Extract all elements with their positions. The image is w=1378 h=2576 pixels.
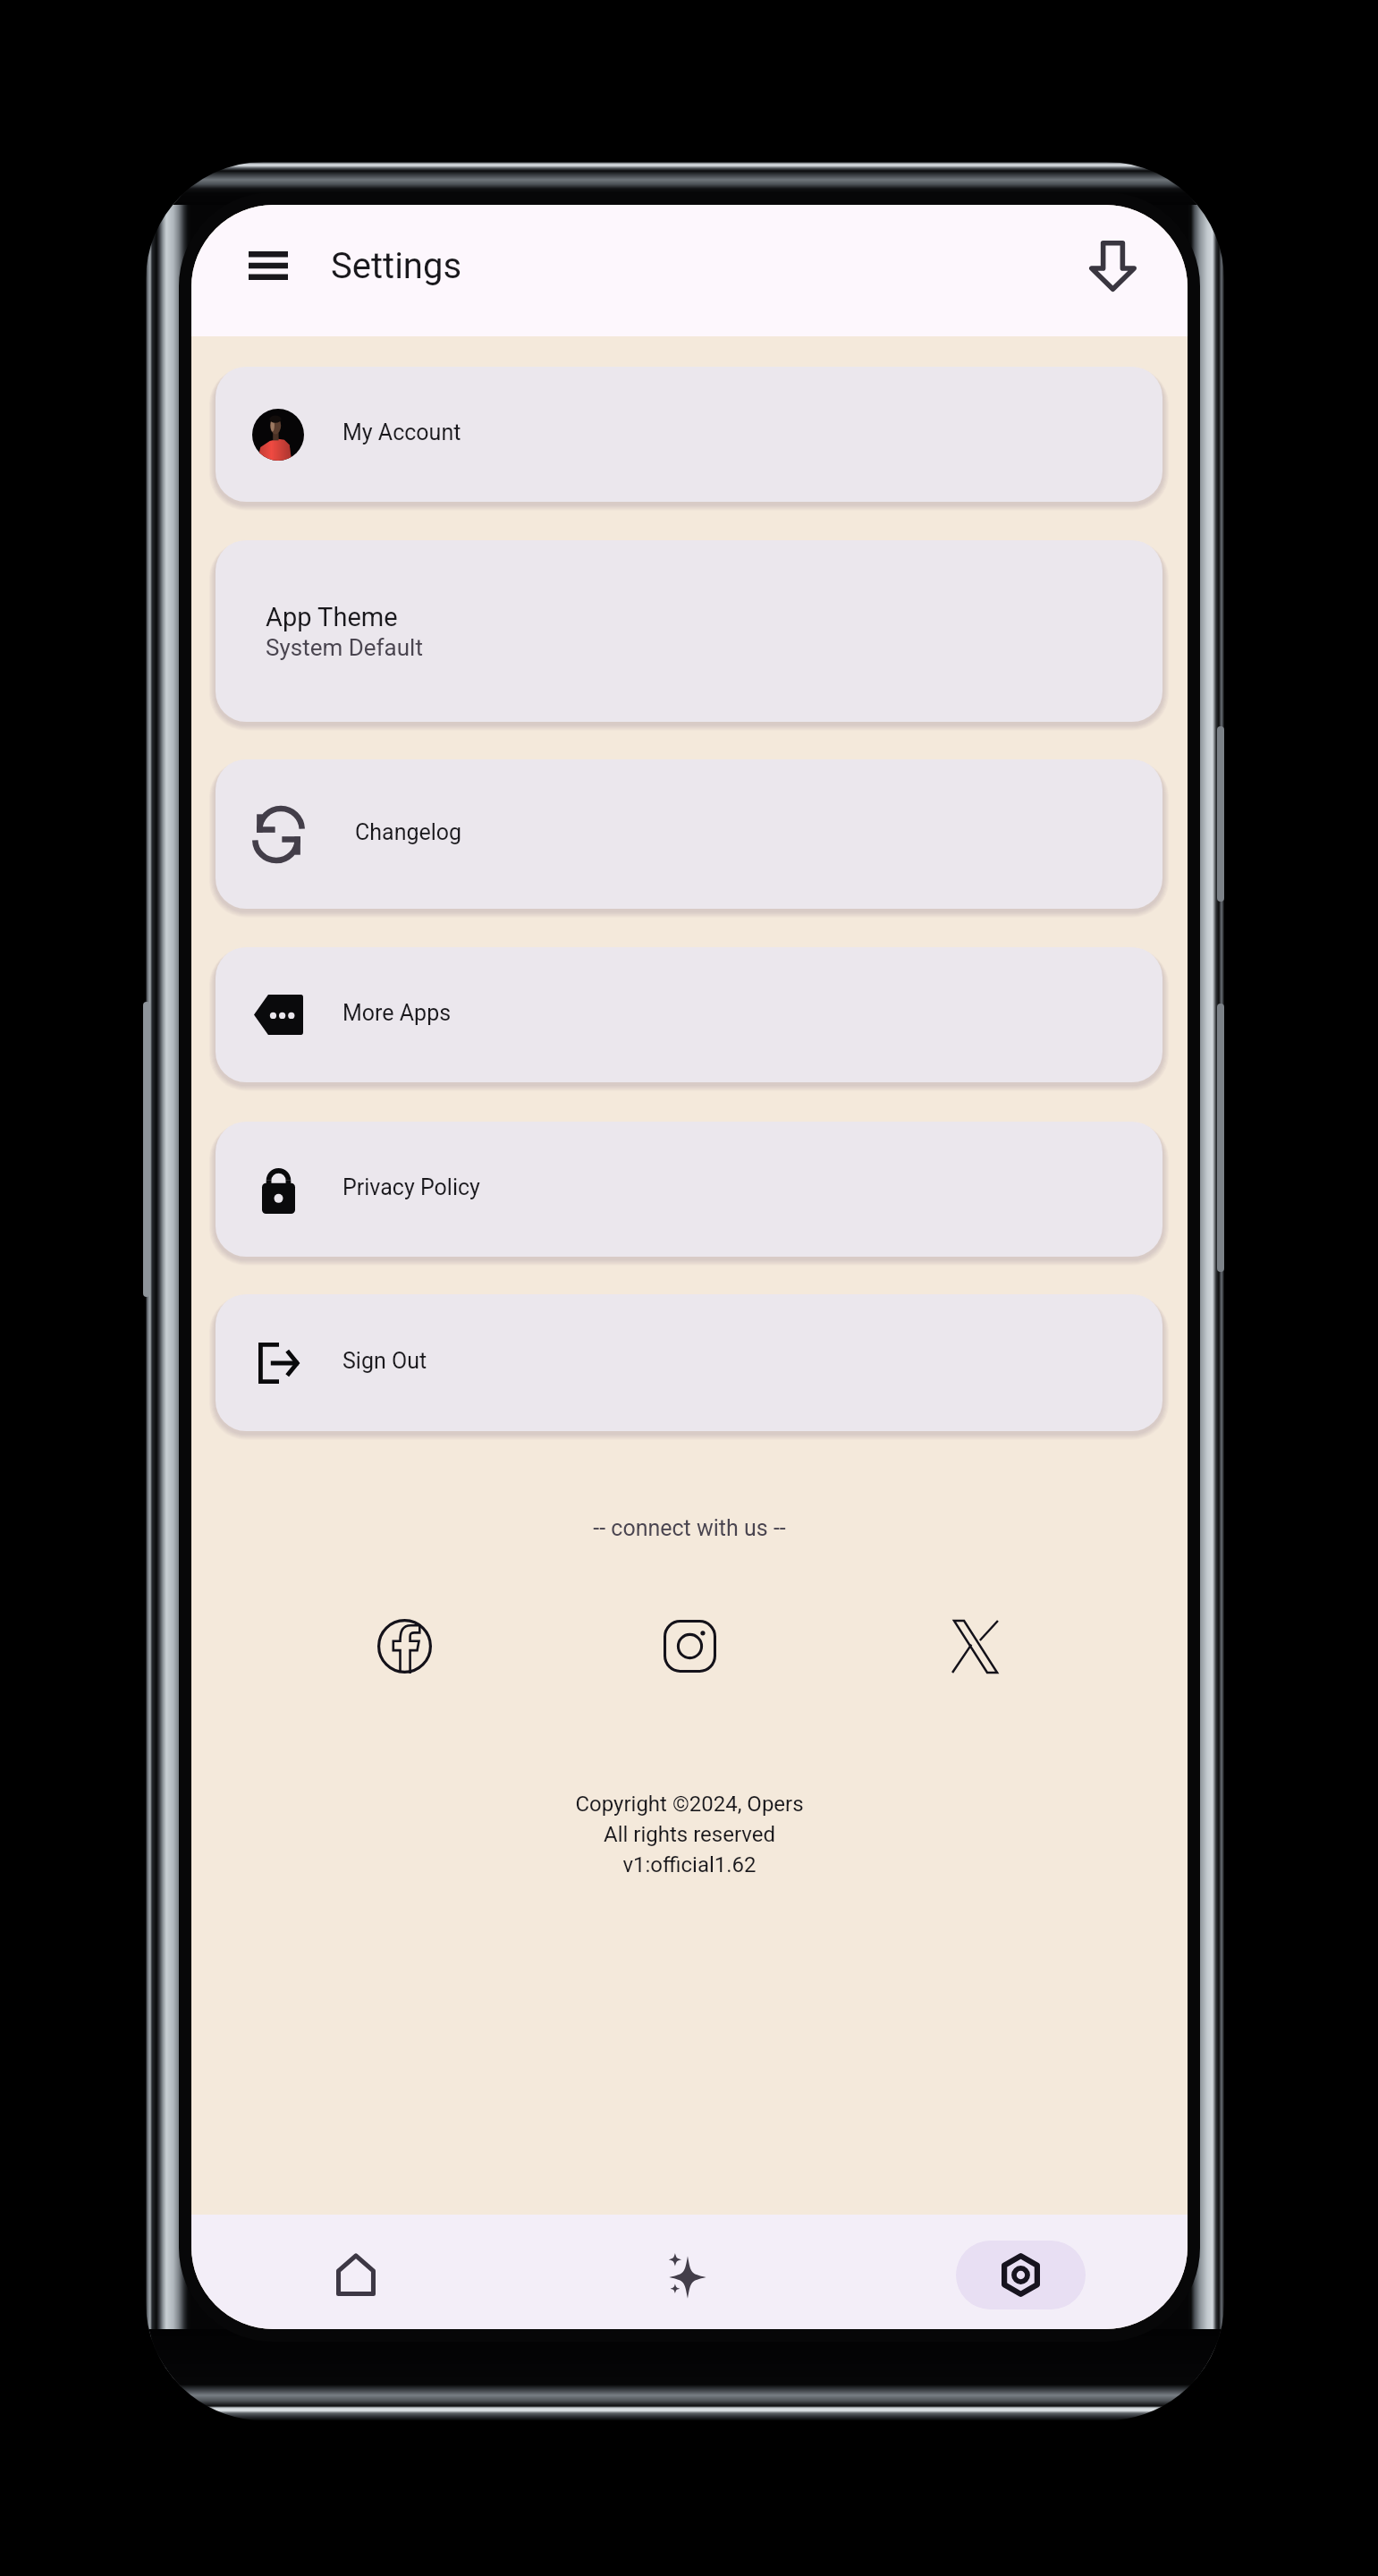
button[interactable]: Changelog <box>216 759 1162 909</box>
button[interactable]: Privacy Policy <box>216 1122 1162 1257</box>
button[interactable]: App Theme <box>216 540 1162 722</box>
button[interactable]: More Apps <box>216 947 1162 1082</box>
button[interactable]: Explore <box>634 2227 741 2322</box>
button[interactable]: Home <box>302 2227 410 2322</box>
staticText: -- connect with us -- <box>191 1515 1188 1541</box>
button[interactable]: Download <box>1071 225 1154 307</box>
button[interactable]: X <box>934 1606 1015 1687</box>
staticText: App Theme <box>266 602 398 632</box>
button[interactable]: My Account <box>216 367 1162 502</box>
staticText: System Default <box>266 634 423 661</box>
staticText: Privacy Policy <box>342 1174 480 1200</box>
button[interactable]: Settings <box>956 2241 1086 2309</box>
button[interactable]: Instagram <box>649 1606 730 1686</box>
staticText: Sign Out <box>342 1348 427 1374</box>
staticText: Changelog <box>355 819 462 845</box>
staticText: Settings <box>331 245 462 287</box>
button[interactable]: Menu <box>228 225 309 306</box>
staticText: More Apps <box>342 1000 452 1026</box>
button[interactable]: Sign Out <box>216 1294 1162 1431</box>
staticText: Copyright ©2024, Opers All rights reserv… <box>191 1792 1188 1877</box>
staticText: My Account <box>342 419 461 445</box>
button[interactable]: Facebook <box>364 1606 444 1686</box>
